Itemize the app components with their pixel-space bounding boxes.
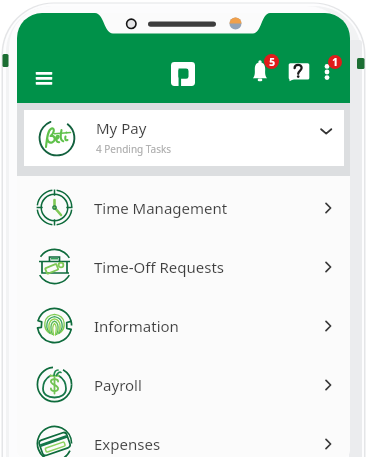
- staticText: Payroll: [94, 375, 142, 395]
- staticText: Time Management: [94, 198, 228, 218]
- button[interactable]: Payroll: [17, 355, 350, 414]
- staticText: Information: [94, 316, 179, 336]
- staticText: Expenses: [94, 434, 161, 454]
- staticText: My Pay: [96, 118, 147, 138]
- button[interactable]: Time Management: [17, 178, 350, 237]
- staticText: 1: [332, 55, 338, 69]
- button[interactable]: Notifications: [242, 54, 278, 90]
- staticText: 4 Pending Tasks: [96, 142, 172, 156]
- button[interactable]: Time-Off Requests: [17, 237, 350, 296]
- button[interactable]: Menu: [26, 60, 62, 96]
- button[interactable]: My Pay: [24, 110, 344, 166]
- staticText: Time-Off Requests: [94, 257, 224, 277]
- button[interactable]: More options: [309, 54, 345, 90]
- button[interactable]: Help: [281, 54, 317, 90]
- staticText: 5: [269, 55, 275, 69]
- button[interactable]: Expenses: [17, 414, 350, 457]
- button[interactable]: Information: [17, 296, 350, 355]
